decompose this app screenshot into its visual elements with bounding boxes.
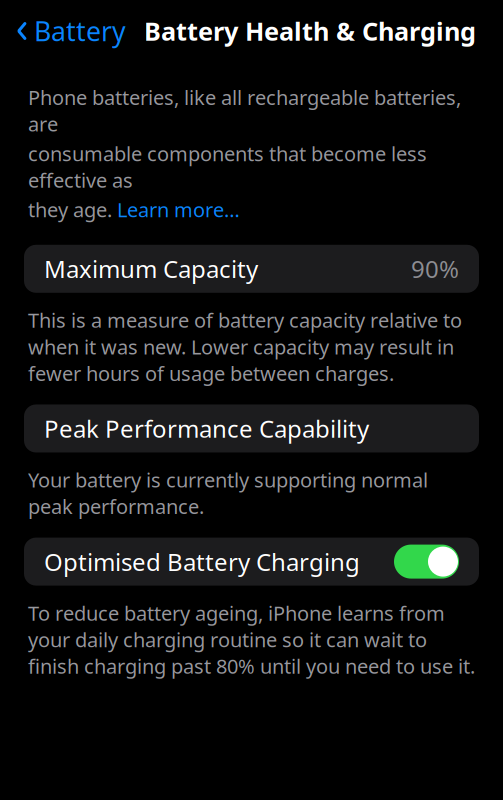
button[interactable]: Peak Performance Capability [24, 404, 479, 452]
staticText: Battery Health & Charging [144, 14, 476, 48]
button[interactable]: Optimised Battery Charging [24, 538, 479, 586]
staticText: Your battery is currently supporting nor… [28, 466, 428, 520]
staticText: consumable components that become less e… [28, 140, 427, 193]
staticText: Battery [34, 13, 126, 49]
staticText: Peak Performance Capability [44, 412, 369, 444]
staticText: This is a measure of battery capacity re… [28, 307, 462, 386]
staticText: Learn more… [117, 196, 240, 223]
button[interactable]: Maximum Capacity [24, 245, 479, 293]
staticText: Phone batteries, like all rechargeable b… [28, 84, 461, 137]
button[interactable]: Battery [0, 5, 126, 57]
staticText: To reduce battery ageing, iPhone learns … [28, 600, 475, 679]
button[interactable]: Learn more… [117, 196, 240, 223]
staticText: Maximum Capacity [44, 253, 258, 285]
staticText: 90% [411, 253, 459, 285]
staticText: they age. [28, 196, 112, 223]
staticText: Optimised Battery Charging [44, 546, 360, 578]
